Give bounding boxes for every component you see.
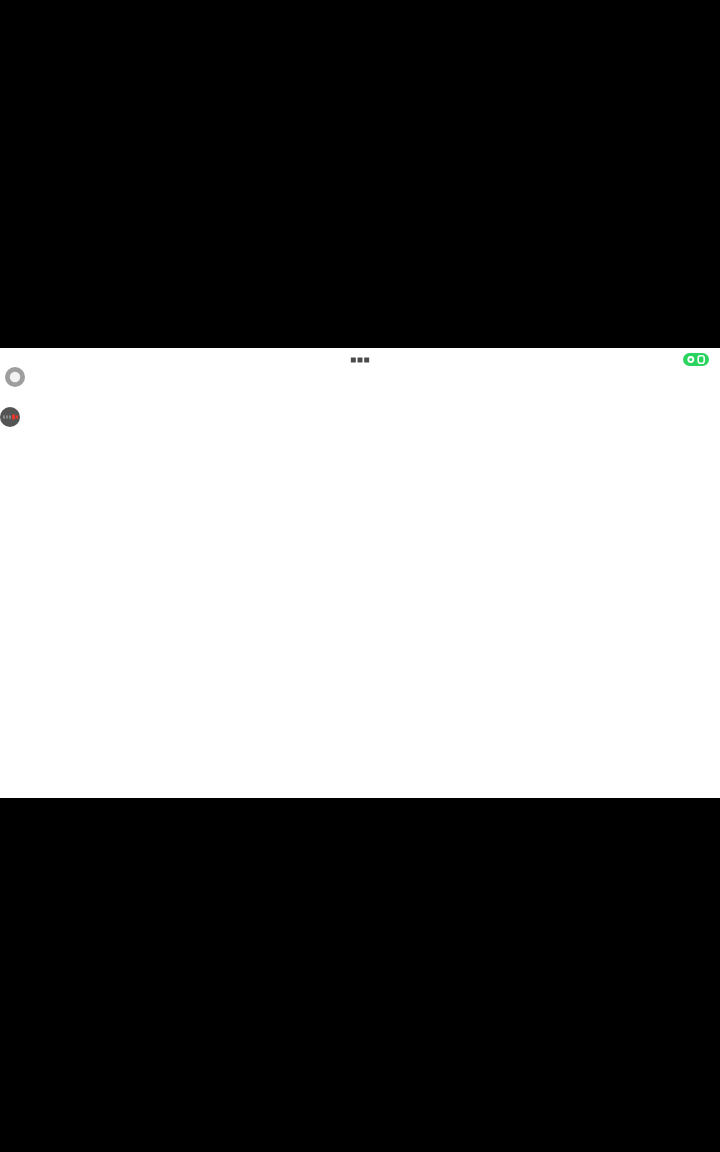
button[interactable]: Status badge xyxy=(683,353,709,366)
button[interactable]: Profile xyxy=(5,367,25,387)
button[interactable]: More options xyxy=(347,353,373,367)
button[interactable]: Account xyxy=(0,407,20,427)
